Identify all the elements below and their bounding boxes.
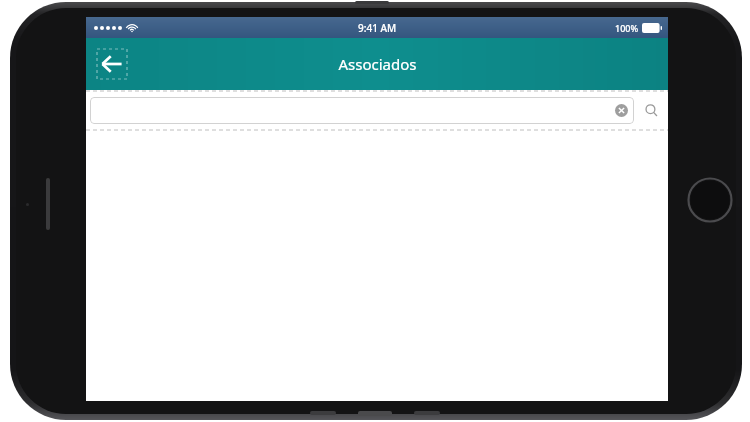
- button[interactable]: Clear text: [90, 97, 634, 124]
- staticText: 100%: [615, 22, 639, 34]
- staticText: 9:41 AM: [358, 21, 397, 35]
- button[interactable]: Search: [638, 97, 664, 124]
- button[interactable]: Home: [687, 177, 733, 223]
- button[interactable]: Clear text: [615, 104, 628, 117]
- staticText: Associados: [338, 54, 417, 74]
- button[interactable]: Back: [96, 48, 128, 80]
